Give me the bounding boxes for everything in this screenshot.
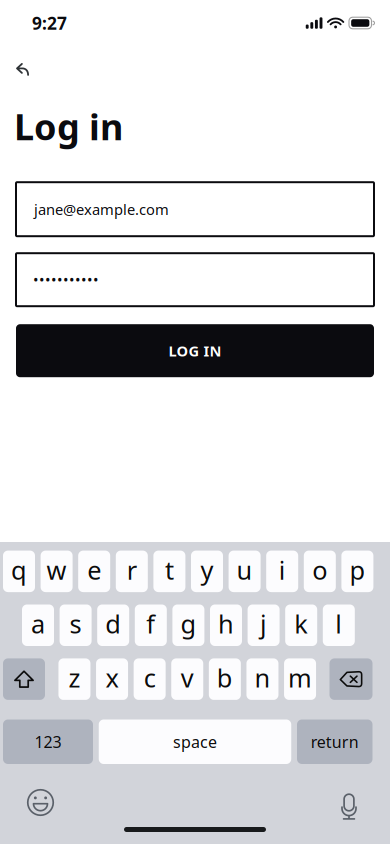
button[interactable]: Shift [3, 658, 45, 700]
staticText: p [349, 553, 365, 587]
button[interactable]: i [266, 551, 298, 592]
staticText: e [87, 553, 101, 587]
button[interactable]: n [246, 658, 278, 700]
staticText: return [311, 731, 359, 752]
staticText: 9:27 [32, 11, 67, 34]
staticText: z [68, 661, 80, 694]
staticText: i [279, 553, 286, 587]
staticText: k [294, 607, 308, 640]
button[interactable]: l [323, 604, 355, 646]
button[interactable]: m [284, 658, 316, 700]
staticText: v [181, 661, 194, 694]
staticText: r [127, 553, 137, 587]
staticText: g [180, 607, 196, 640]
button[interactable]: w [41, 551, 73, 592]
staticText: n [254, 661, 270, 694]
staticText: f [146, 607, 155, 640]
staticText: c [144, 661, 156, 694]
button[interactable]: Emoji keyboard [27, 789, 54, 816]
button[interactable]: y [191, 551, 223, 592]
button[interactable]: return [297, 719, 372, 764]
button[interactable]: p [341, 551, 373, 592]
button[interactable]: b [209, 658, 241, 700]
button[interactable]: z [58, 658, 90, 700]
button[interactable]: x [96, 658, 128, 700]
staticText: jane@example.com [34, 199, 169, 219]
button[interactable]: space [99, 719, 291, 764]
staticText: a [31, 607, 45, 640]
button[interactable]: g [172, 604, 204, 646]
staticText: t [165, 553, 174, 587]
button[interactable]: 123 [3, 719, 93, 764]
staticText: o [312, 553, 327, 587]
staticText: h [218, 607, 234, 640]
button[interactable]: t [153, 551, 185, 592]
button[interactable]: u [229, 551, 261, 592]
staticText: b [217, 661, 233, 694]
staticText: d [105, 607, 121, 640]
staticText: s [70, 607, 82, 640]
staticText: l [335, 607, 342, 640]
button[interactable]: Dictation [336, 789, 362, 816]
staticText: u [237, 553, 253, 587]
staticText: space [173, 731, 217, 752]
button[interactable]: h [210, 604, 242, 646]
button[interactable]: j [248, 604, 280, 646]
button[interactable]: c [134, 658, 166, 700]
button[interactable]: k [285, 604, 317, 646]
button[interactable]: s [60, 604, 92, 646]
button[interactable]: d [97, 604, 129, 646]
staticText: Log in [14, 102, 123, 150]
staticText: j [260, 607, 267, 640]
staticText: ••••••••••• [33, 270, 99, 289]
staticText: 123 [34, 731, 61, 752]
button[interactable]: r [116, 551, 148, 592]
staticText: q [11, 553, 27, 587]
button[interactable]: o [304, 551, 336, 592]
button[interactable]: f [135, 604, 167, 646]
staticText: y [200, 553, 213, 587]
button[interactable]: LOG IN [16, 324, 374, 377]
staticText: LOG IN [168, 341, 221, 360]
button[interactable]: Back [8, 55, 37, 83]
button[interactable]: a [22, 604, 54, 646]
button[interactable]: v [171, 658, 203, 700]
staticText: x [105, 661, 118, 694]
staticText: w [47, 553, 67, 587]
button[interactable]: e [78, 551, 110, 592]
button[interactable]: Delete [329, 658, 372, 700]
button[interactable]: q [3, 551, 35, 592]
staticText: m [288, 661, 312, 694]
